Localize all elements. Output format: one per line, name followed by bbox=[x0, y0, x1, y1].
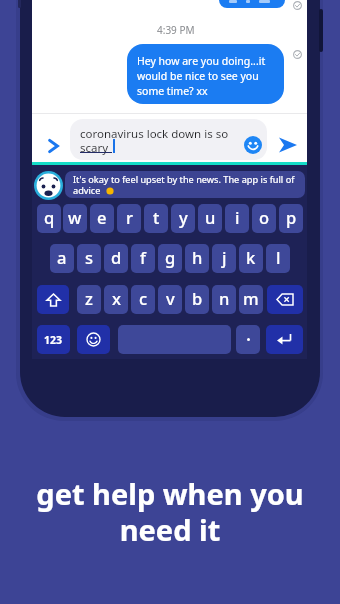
button[interactable] bbox=[70, 119, 267, 160]
staticText: c bbox=[139, 287, 148, 309]
staticText: e bbox=[97, 206, 107, 228]
button[interactable]: h bbox=[185, 244, 209, 273]
staticText: coronavirus lock down is so bbox=[80, 126, 229, 142]
staticText: m bbox=[243, 287, 259, 309]
button[interactable]: 123 bbox=[37, 325, 70, 354]
button[interactable]: j bbox=[212, 244, 236, 273]
button[interactable]: g bbox=[158, 244, 182, 273]
button[interactable]: q bbox=[37, 204, 61, 233]
button[interactable]: e bbox=[90, 204, 114, 233]
staticText: x bbox=[112, 287, 121, 309]
staticText: p bbox=[286, 206, 297, 228]
staticText: get help when you need it bbox=[36, 474, 304, 550]
staticText: n bbox=[219, 287, 230, 309]
staticText: It's okay to feel upset by the news. The… bbox=[73, 173, 295, 186]
staticText: b bbox=[192, 287, 203, 309]
staticText: a bbox=[57, 246, 67, 268]
staticText: 123 bbox=[44, 333, 63, 347]
staticText: j bbox=[222, 246, 227, 268]
staticText: o bbox=[259, 206, 270, 228]
staticText: g bbox=[165, 246, 176, 268]
button[interactable] bbox=[236, 325, 260, 354]
button[interactable] bbox=[278, 136, 298, 154]
button[interactable]: d bbox=[104, 244, 128, 273]
staticText: s bbox=[85, 246, 94, 268]
button[interactable]: i bbox=[225, 204, 249, 233]
staticText: l bbox=[276, 246, 281, 268]
staticText: d bbox=[111, 246, 122, 268]
button[interactable] bbox=[244, 136, 262, 154]
button[interactable]: Hey how are you doing...it would be nice… bbox=[127, 44, 284, 104]
staticText: w bbox=[68, 206, 82, 228]
button[interactable] bbox=[118, 325, 231, 354]
button[interactable] bbox=[267, 285, 303, 314]
staticText: Hey how are you doing...it would be nice… bbox=[137, 54, 266, 98]
staticText: h bbox=[192, 246, 203, 268]
staticText: q bbox=[44, 206, 55, 228]
button[interactable] bbox=[266, 325, 303, 354]
button[interactable] bbox=[37, 285, 69, 314]
button[interactable] bbox=[77, 325, 110, 354]
button[interactable]: t bbox=[144, 204, 168, 233]
button[interactable] bbox=[48, 139, 59, 153]
button[interactable]: a bbox=[50, 244, 74, 273]
staticText: y bbox=[179, 206, 188, 228]
staticText: advice bbox=[73, 184, 101, 197]
staticText: v bbox=[166, 287, 175, 309]
button[interactable]: n bbox=[212, 285, 236, 314]
staticText: scary bbox=[80, 140, 109, 156]
staticText: f bbox=[140, 246, 146, 268]
button[interactable]: b bbox=[185, 285, 209, 314]
button[interactable]: k bbox=[239, 244, 263, 273]
staticText: u bbox=[205, 206, 216, 228]
staticText: i bbox=[235, 206, 240, 228]
staticText: r bbox=[126, 206, 133, 228]
button[interactable]: s bbox=[77, 244, 101, 273]
button[interactable]: p bbox=[279, 204, 303, 233]
button[interactable] bbox=[34, 171, 63, 200]
button[interactable]: x bbox=[104, 285, 128, 314]
button[interactable]: l bbox=[266, 244, 290, 273]
button[interactable]: c bbox=[131, 285, 155, 314]
button[interactable]: m bbox=[239, 285, 263, 314]
staticText: 4:39 PM bbox=[157, 23, 195, 37]
staticText: z bbox=[85, 287, 93, 309]
staticText: t bbox=[153, 206, 160, 228]
button[interactable] bbox=[65, 171, 305, 198]
button[interactable]: v bbox=[158, 285, 182, 314]
button[interactable]: w bbox=[63, 204, 87, 233]
button[interactable]: z bbox=[77, 285, 101, 314]
button[interactable]: r bbox=[117, 204, 141, 233]
button[interactable]: o bbox=[252, 204, 276, 233]
button[interactable]: u bbox=[198, 204, 222, 233]
staticText: k bbox=[246, 246, 256, 268]
button[interactable]: y bbox=[171, 204, 195, 233]
button[interactable]: f bbox=[131, 244, 155, 273]
